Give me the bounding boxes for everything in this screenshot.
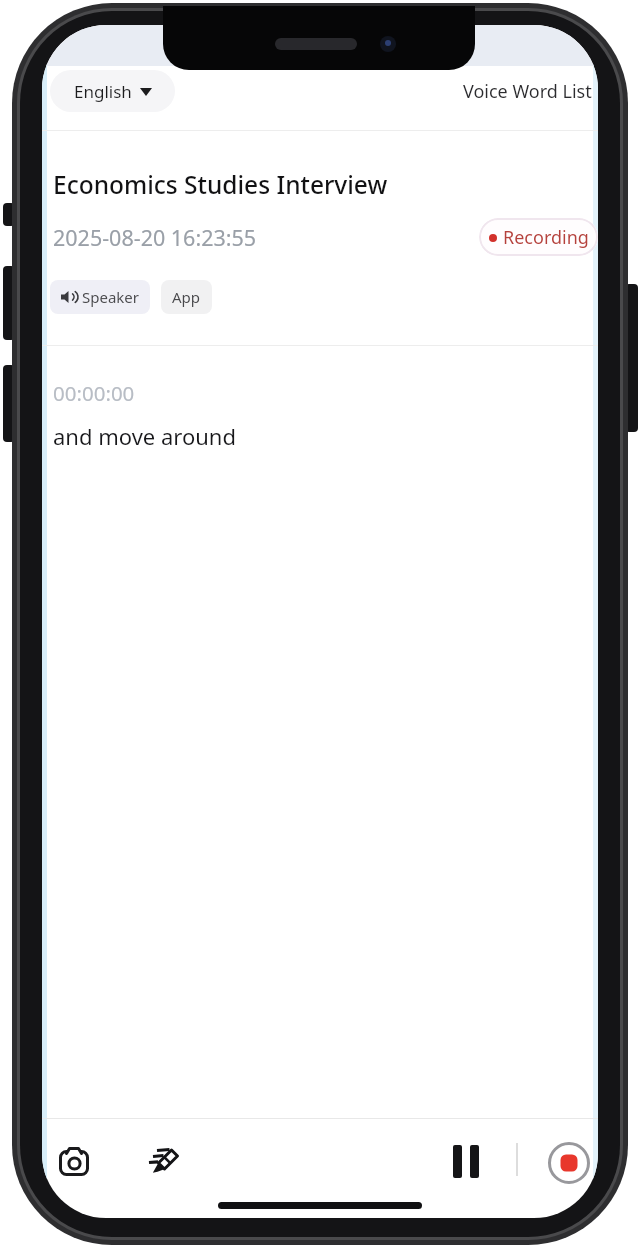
- staticText: and move around: [53, 421, 236, 451]
- button[interactable]: English: [50, 70, 175, 112]
- button[interactable]: App: [161, 280, 212, 314]
- button[interactable]: [55, 1142, 93, 1180]
- staticText: English: [74, 80, 132, 103]
- staticText: 2025-08-20 16:23:55: [53, 223, 257, 252]
- button[interactable]: Recording: [479, 218, 598, 256]
- staticText: Speaker: [82, 287, 140, 307]
- button[interactable]: [448, 1142, 484, 1180]
- button[interactable]: Voice Word List: [427, 70, 592, 112]
- staticText: Voice Word List: [463, 79, 592, 104]
- button[interactable]: Speaker: [50, 280, 150, 314]
- staticText: 00:00:00: [53, 379, 135, 407]
- staticText: App: [172, 287, 201, 307]
- staticText: Economics Studies Interview: [53, 168, 388, 201]
- button[interactable]: [143, 1141, 185, 1183]
- button[interactable]: [547, 1141, 590, 1184]
- staticText: Recording: [503, 225, 589, 250]
